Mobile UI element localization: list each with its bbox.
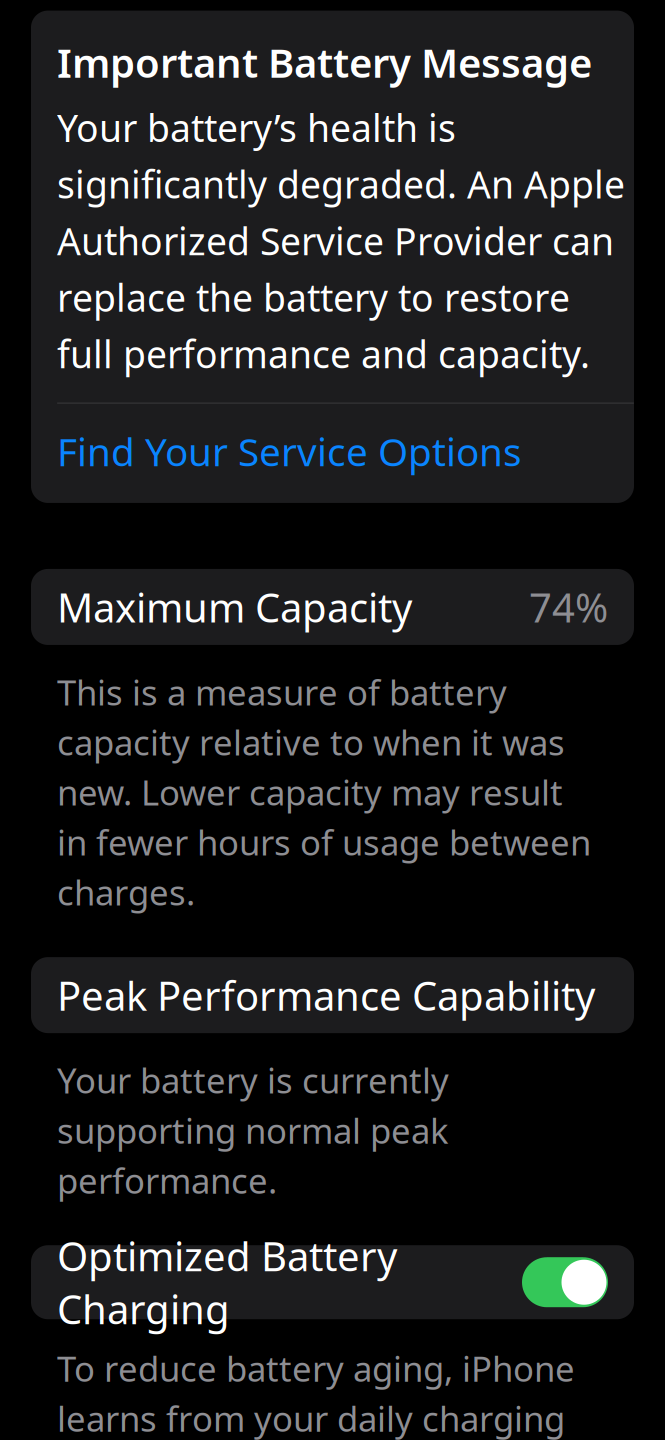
staticText: Maximum Capacity xyxy=(57,580,412,633)
button[interactable]: Optimized Battery Charging xyxy=(31,1245,634,1319)
staticText: To reduce battery aging, iPhone learns f… xyxy=(57,1345,599,1440)
staticText: Peak Performance Capability xyxy=(57,969,595,1022)
staticText: Find Your Service Options xyxy=(57,426,522,477)
staticText: Your battery is currently supporting nor… xyxy=(57,1057,449,1203)
button[interactable]: Peak Performance Capability xyxy=(31,957,634,1033)
staticText: This is a measure of battery capacity re… xyxy=(57,669,591,915)
staticText: Optimized Battery Charging xyxy=(57,1229,397,1335)
staticText: Important Battery Message xyxy=(57,36,592,89)
button[interactable]: Find Your Service Options xyxy=(57,404,634,503)
staticText: Your battery’s health is significantly d… xyxy=(57,103,625,379)
staticText: 74% xyxy=(529,580,608,633)
button[interactable]: Maximum Capacity xyxy=(31,569,634,645)
